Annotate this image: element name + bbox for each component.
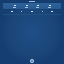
button[interactable]: Start [30, 59, 34, 63]
button[interactable] [3, 3, 61, 9]
button[interactable] [2, 10, 62, 13]
